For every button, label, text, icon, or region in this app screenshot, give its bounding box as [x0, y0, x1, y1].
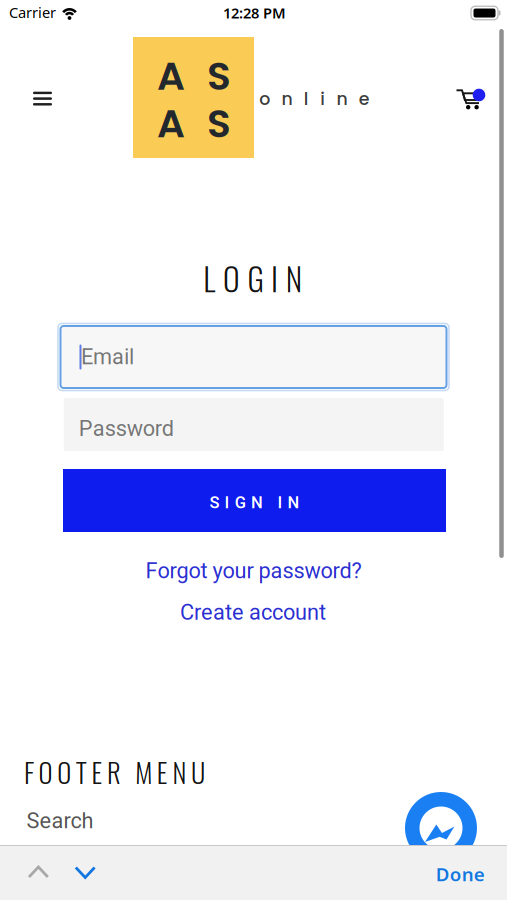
button[interactable]: Menu: [20, 79, 64, 119]
staticText: A: [157, 49, 185, 103]
staticText: o: [259, 87, 270, 111]
staticText: 12:28 PM: [223, 3, 286, 22]
staticText: M: [135, 752, 152, 792]
staticText: G: [247, 255, 263, 301]
staticText: N: [286, 255, 302, 301]
staticText: i: [320, 87, 325, 111]
staticText: O: [57, 752, 71, 792]
staticText: E: [91, 752, 102, 792]
button[interactable]: Search: [26, 805, 93, 837]
staticText: N: [251, 491, 263, 515]
staticText: Create account: [180, 597, 326, 629]
button[interactable]: S: [63, 469, 446, 532]
staticText: N: [288, 491, 300, 515]
button[interactable]: Create account: [180, 597, 326, 629]
staticText: U: [191, 752, 205, 792]
staticText: O: [39, 752, 53, 792]
staticText: R: [107, 752, 121, 792]
staticText: Search: [26, 805, 93, 837]
staticText: T: [76, 752, 87, 792]
staticText: O: [223, 255, 240, 301]
button[interactable]: Chat with us on Messenger: [405, 792, 477, 864]
button[interactable]: Password: [64, 398, 444, 451]
staticText: I: [277, 491, 282, 515]
staticText: G: [235, 491, 246, 515]
button[interactable]: AS AS online home: [133, 37, 254, 158]
staticText: S: [209, 491, 219, 515]
button[interactable]: Next field: [68, 857, 102, 887]
button[interactable]: Done: [436, 862, 485, 886]
button[interactable]: Previous field: [21, 857, 55, 887]
staticText: S: [207, 96, 231, 151]
button[interactable]: Email: [59, 325, 447, 389]
staticText: Done: [436, 862, 485, 886]
staticText: n: [282, 87, 293, 111]
staticText: A: [157, 96, 185, 151]
staticText: l: [304, 87, 309, 111]
staticText: I: [271, 255, 278, 301]
staticText: Forgot your password?: [145, 555, 361, 587]
staticText: L: [203, 255, 215, 301]
staticText: n: [336, 87, 347, 111]
staticText: Email: [81, 341, 134, 373]
staticText: I: [225, 491, 230, 515]
button[interactable]: Cart: [447, 79, 491, 119]
staticText: Carrier: [9, 2, 56, 22]
staticText: Password: [79, 413, 174, 445]
button[interactable]: Forgot your password?: [145, 555, 361, 587]
staticText: E: [157, 752, 168, 792]
staticText: N: [172, 752, 186, 792]
staticText: F: [24, 752, 34, 792]
staticText: e: [359, 87, 370, 111]
staticText: S: [207, 49, 231, 103]
